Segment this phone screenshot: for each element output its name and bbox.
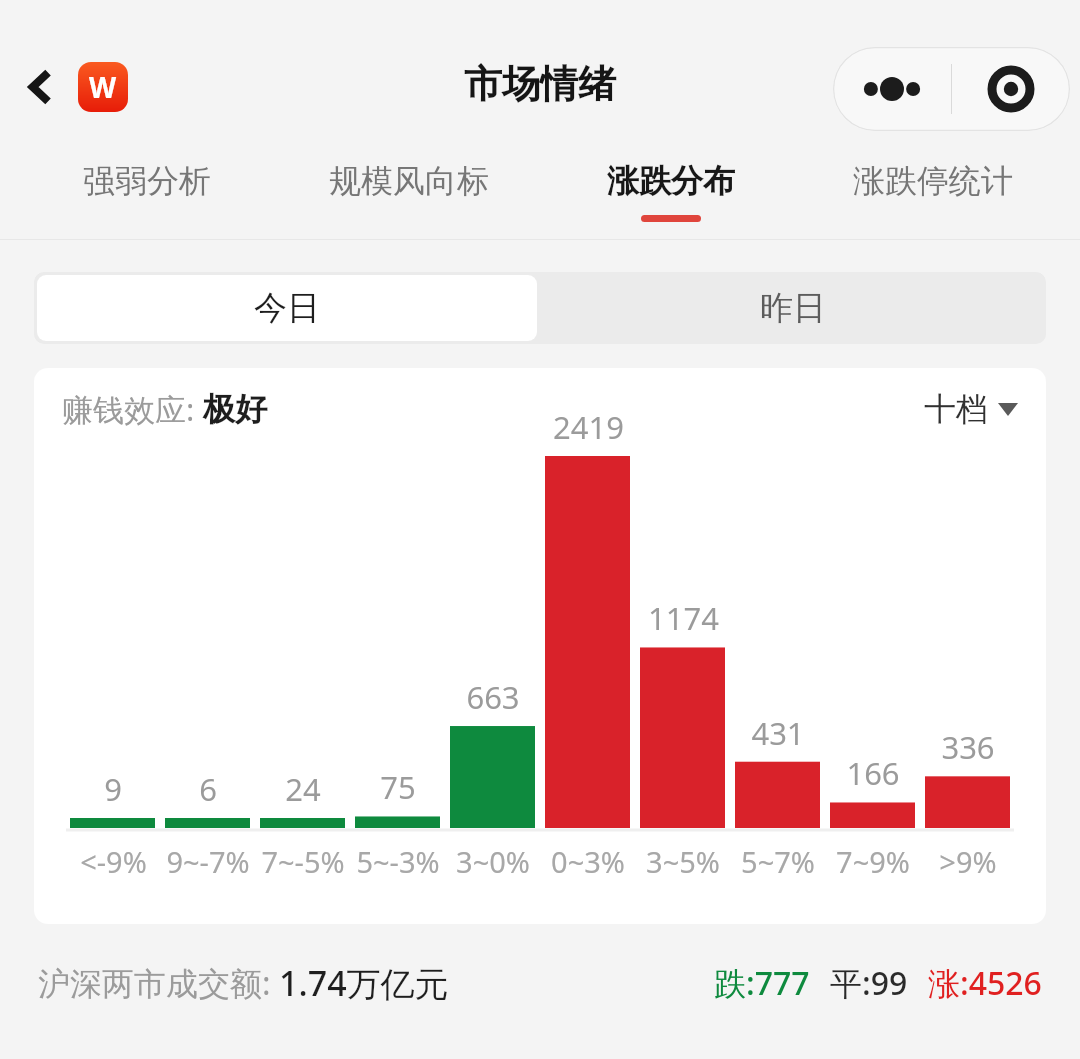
staticText: 1.74万亿元 [279, 960, 449, 1006]
staticText: 3~0% [456, 842, 530, 881]
staticText: 0~3% [551, 842, 625, 881]
staticText: 涨跌分布 [607, 161, 735, 201]
staticText: 5~7% [741, 842, 815, 881]
staticText: 7~-5% [261, 842, 345, 881]
button[interactable]: More options [833, 47, 951, 131]
button[interactable]: 强弱分析 [16, 145, 278, 239]
staticText: 663 [466, 676, 520, 718]
staticText: 24 [285, 768, 321, 810]
staticText: 2419 [553, 406, 624, 448]
staticText: 5~-3% [356, 842, 440, 881]
staticText: 9 [104, 768, 122, 810]
button[interactable]: 涨跌分布 [540, 145, 802, 239]
staticText: 今日 [254, 287, 320, 329]
staticText: 3~5% [646, 842, 720, 881]
staticText: 9~-7% [166, 842, 250, 881]
button[interactable]: 规模风向标 [278, 145, 540, 239]
staticText: 赚钱效应: [62, 388, 203, 430]
staticText: <-9% [80, 842, 147, 881]
button[interactable]: 昨日 [540, 272, 1046, 344]
staticText: 极好 [203, 389, 267, 429]
staticText: >9% [939, 842, 997, 881]
staticText: 166 [846, 752, 900, 794]
button[interactable]: 十档 [924, 389, 1018, 429]
staticText: 75 [380, 766, 416, 808]
staticText: 1174 [648, 597, 719, 639]
staticText: 市场情绪 [0, 60, 1080, 108]
staticText: 昨日 [760, 287, 826, 329]
staticText: 跌:777 [714, 961, 810, 1005]
button[interactable]: App home [78, 62, 128, 112]
staticText: 6 [199, 768, 217, 810]
staticText: 平:99 [830, 961, 908, 1005]
button[interactable]: Close [952, 47, 1070, 131]
staticText: 强弱分析 [83, 161, 211, 201]
button[interactable]: 涨跌停统计 [802, 145, 1064, 239]
button[interactable]: 今日 [37, 275, 537, 341]
button[interactable]: Back [14, 60, 68, 114]
staticText: 规模风向标 [329, 161, 489, 201]
staticText: 7~9% [836, 842, 910, 881]
staticText: 431 [751, 712, 805, 754]
staticText: 十档 [924, 389, 988, 429]
staticText: 沪深两市成交额: [38, 961, 279, 1005]
staticText: 336 [941, 726, 995, 768]
staticText: 涨:4526 [928, 961, 1042, 1005]
staticText: 涨跌停统计 [853, 161, 1013, 201]
staticText: W [89, 68, 117, 106]
